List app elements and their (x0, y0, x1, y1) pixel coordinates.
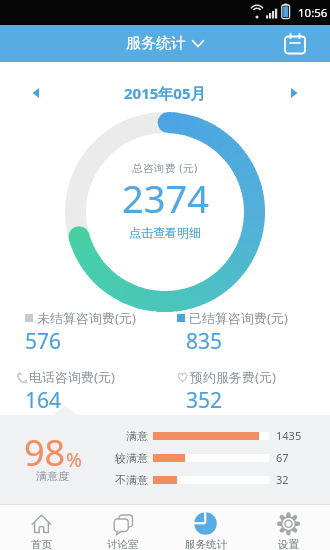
button[interactable]: 设置 (247, 505, 330, 550)
button[interactable]: 已结算咨询费(元) (177, 309, 330, 356)
staticText: 服务统计 (185, 538, 227, 550)
button[interactable] (274, 78, 314, 108)
staticText: 2015年05月 (124, 83, 206, 103)
staticText: 835 (186, 327, 223, 356)
button[interactable] (16, 78, 56, 108)
staticText: 满意度 (36, 469, 69, 483)
staticText: 32 (276, 472, 289, 487)
staticText: 总咨询费 (元) (132, 161, 198, 175)
button[interactable] (283, 32, 307, 56)
staticText: 164 (25, 386, 62, 415)
staticText: 1435 (276, 428, 302, 443)
staticText: 点击查看明细 (129, 225, 201, 240)
staticText: 67 (276, 450, 289, 465)
button[interactable]: 未结算咨询费(元) (25, 309, 177, 356)
staticText: 较满意 (115, 451, 148, 465)
staticText: 设置 (278, 538, 299, 550)
staticText: 首页 (31, 538, 52, 550)
button[interactable]: 电话咨询费(元) (25, 368, 177, 415)
staticText: 10:56 (298, 5, 328, 21)
staticText: 352 (186, 386, 223, 415)
staticText: 2374 (122, 172, 209, 224)
button[interactable]: 总咨询费 (元) (0, 112, 330, 307)
staticText: 电话咨询费(元) (29, 368, 115, 386)
button[interactable]: 首页 (0, 505, 82, 550)
button[interactable]: 98 (0, 428, 105, 491)
button[interactable]: 服务统计 (126, 34, 204, 53)
button[interactable]: 讨论室 (82, 505, 164, 550)
button[interactable]: 预约服务费(元) (177, 368, 330, 415)
staticText: 不满意 (115, 473, 148, 487)
staticText: 满意 (126, 429, 148, 443)
staticText: 已结算咨询费(元) (189, 309, 288, 327)
staticText: 服务统计 (126, 34, 186, 53)
staticText: 预约服务费(元) (190, 368, 276, 386)
staticText: 98 (24, 428, 66, 477)
staticText: 576 (25, 327, 62, 356)
button[interactable]: 服务统计 (164, 505, 247, 550)
staticText: % (66, 447, 82, 473)
staticText: 未结算咨询费(元) (37, 309, 136, 327)
staticText: 讨论室 (107, 538, 139, 550)
